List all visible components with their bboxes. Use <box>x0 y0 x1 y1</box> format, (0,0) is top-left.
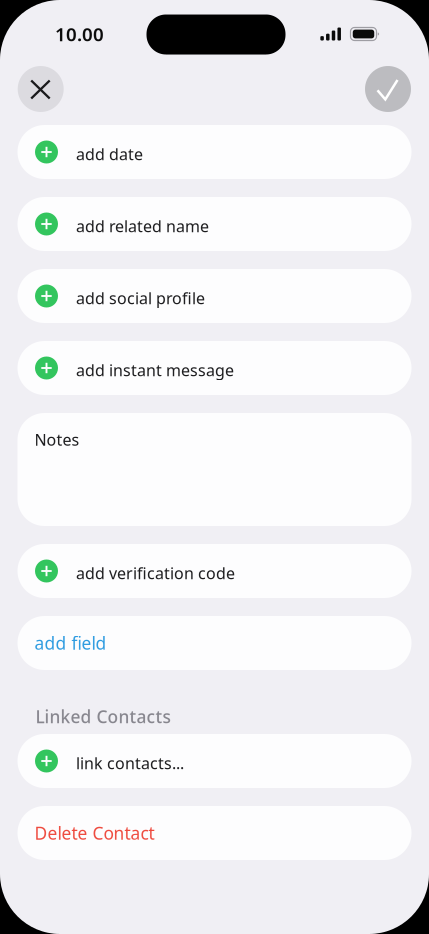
staticText: add field <box>34 631 106 654</box>
staticText: add related name <box>76 215 209 237</box>
staticText: add social profile <box>76 287 205 309</box>
staticText: Notes <box>34 429 79 450</box>
button[interactable]: Delete Contact <box>17 806 411 860</box>
staticText: Linked Contacts <box>35 705 170 728</box>
button[interactable]: Notes <box>17 413 411 526</box>
button[interactable]: add social profile <box>17 269 411 323</box>
button[interactable]: link contacts... <box>17 734 411 788</box>
button[interactable]: add field <box>17 616 411 670</box>
staticText: add verification code <box>76 562 235 584</box>
button[interactable]: add instant message <box>17 341 411 395</box>
button[interactable]: Done <box>365 66 411 112</box>
button[interactable]: add date <box>17 125 411 179</box>
button[interactable]: add related name <box>17 197 411 251</box>
button[interactable]: add verification code <box>17 544 411 598</box>
staticText: Delete Contact <box>34 821 154 844</box>
staticText: add date <box>76 143 143 165</box>
staticText: add instant message <box>76 359 234 381</box>
staticText: 10.00 <box>55 22 104 46</box>
staticText: link contacts... <box>76 752 184 774</box>
button[interactable]: Cancel <box>18 66 64 112</box>
